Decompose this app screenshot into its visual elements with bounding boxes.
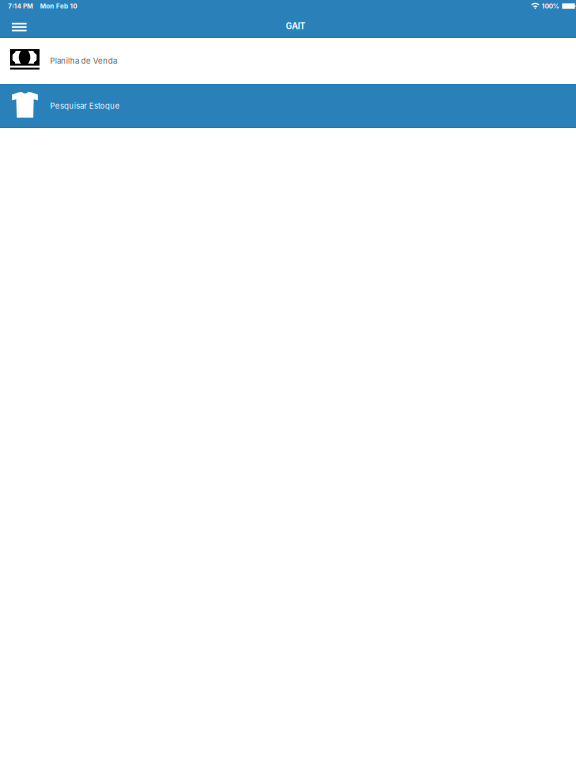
button[interactable]: Pesquisar Estoque	[0, 84, 576, 128]
staticText: GAIT	[286, 21, 306, 31]
staticText: Mon Feb 10	[40, 2, 77, 10]
staticText: 7:14 PM	[8, 2, 33, 10]
staticText: 100%	[542, 2, 559, 10]
button[interactable]: Planilha de Venda	[0, 38, 576, 84]
staticText: Pesquisar Estoque	[50, 101, 120, 111]
staticText: Planilha de Venda	[50, 56, 117, 66]
button[interactable]: Menu	[4, 14, 34, 41]
